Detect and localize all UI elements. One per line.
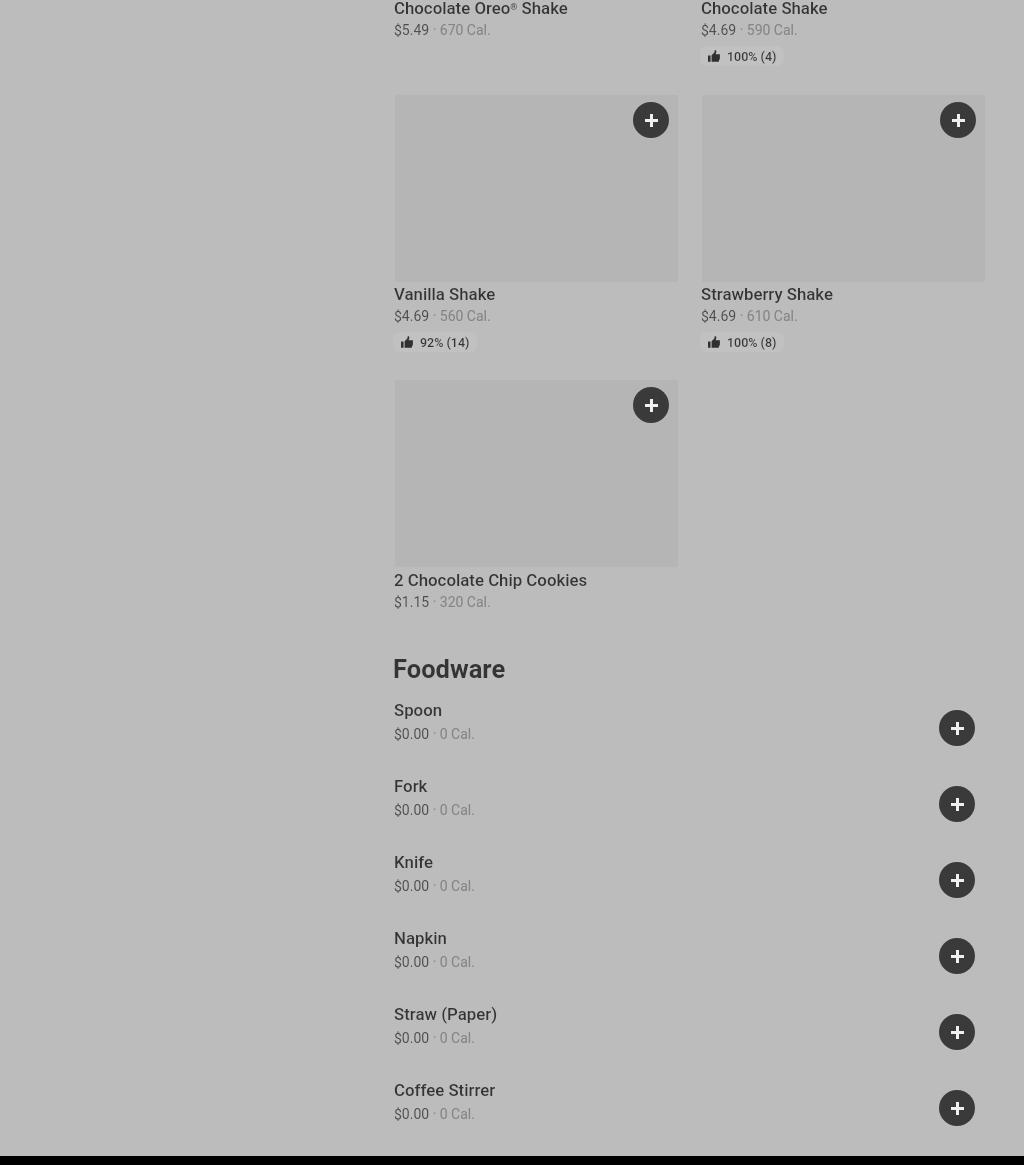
- button[interactable]: Add Napkin: [939, 938, 975, 974]
- staticText: $0.00 · 0 Cal.: [394, 802, 475, 818]
- staticText: $1.15 · 320 Cal.: [394, 594, 491, 610]
- button[interactable]: Add Vanilla Shake: [633, 102, 669, 138]
- staticText: Napkin: [394, 928, 447, 948]
- staticText: $0.00 · 0 Cal.: [394, 726, 475, 742]
- button[interactable]: Strawberry Shake: [702, 95, 985, 282]
- button[interactable]: Add Strawberry Shake: [940, 102, 976, 138]
- staticText: Chocolate Shake: [701, 0, 828, 18]
- staticText: $4.69 · 610 Cal.: [701, 308, 798, 324]
- button[interactable]: Add Fork: [939, 786, 975, 822]
- button[interactable]: Napkin: [394, 918, 975, 994]
- button[interactable]: Add Knife: [939, 862, 975, 898]
- button[interactable]: Coffee Stirrer: [394, 1070, 975, 1146]
- staticText: Spoon: [394, 700, 443, 720]
- button[interactable]: 92% (14): [393, 332, 477, 352]
- button[interactable]: Add 2 Chocolate Chip Cookies: [633, 387, 669, 423]
- button[interactable]: Spoon: [394, 690, 975, 766]
- staticText: Strawberry Shake: [701, 284, 833, 304]
- staticText: Straw (Paper): [394, 1004, 498, 1024]
- button[interactable]: Add Coffee Stirrer: [939, 1090, 975, 1126]
- button[interactable]: Knife: [394, 842, 975, 918]
- staticText: 2 Chocolate Chip Cookies: [394, 570, 588, 590]
- staticText: $0.00 · 0 Cal.: [394, 1030, 475, 1046]
- button[interactable]: Straw (Paper): [394, 994, 975, 1070]
- staticText: Knife: [394, 852, 433, 872]
- staticText: $0.00 · 0 Cal.: [394, 878, 475, 894]
- staticText: 100% (8): [727, 335, 777, 350]
- staticText: $0.00 · 0 Cal.: [394, 954, 475, 970]
- button[interactable]: Add Straw (Paper): [939, 1014, 975, 1050]
- button[interactable]: Fork: [394, 766, 975, 842]
- staticText: $4.69 · 560 Cal.: [394, 308, 491, 324]
- staticText: Chocolate Oreo® Shake: [394, 0, 568, 18]
- button[interactable]: 100% (8): [700, 332, 784, 352]
- staticText: Vanilla Shake: [394, 284, 496, 304]
- staticText: $5.49 · 670 Cal.: [394, 22, 491, 38]
- button[interactable]: 2 Chocolate Chip Cookies: [395, 380, 678, 567]
- staticText: 92% (14): [420, 335, 470, 350]
- staticText: $4.69 · 590 Cal.: [701, 22, 798, 38]
- button[interactable]: Add Spoon: [939, 710, 975, 746]
- button[interactable]: Vanilla Shake: [395, 95, 678, 282]
- button[interactable]: 100% (4): [700, 46, 784, 66]
- staticText: Foodware: [393, 654, 506, 684]
- staticText: 100% (4): [727, 49, 777, 64]
- staticText: Coffee Stirrer: [394, 1080, 496, 1100]
- staticText: Fork: [394, 776, 428, 796]
- staticText: $0.00 · 0 Cal.: [394, 1106, 475, 1122]
